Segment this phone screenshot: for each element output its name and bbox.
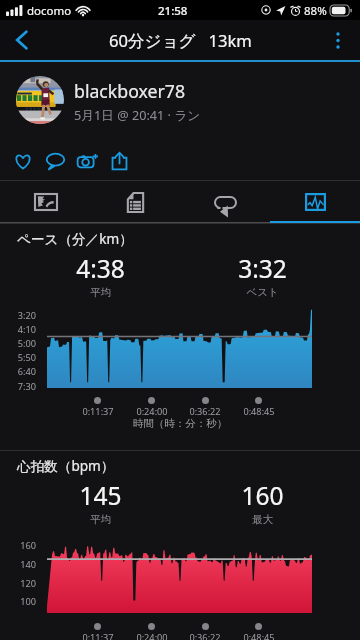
staticText: 0:48:45: [229, 405, 289, 418]
staticText: 平均: [90, 286, 111, 299]
staticText: 4:38: [76, 252, 125, 285]
staticText: 平均: [90, 513, 111, 526]
button[interactable]: Back: [0, 20, 44, 60]
staticText: 最大: [252, 513, 273, 526]
button[interactable]: Share: [103, 147, 135, 175]
staticText: 心拍数（bpm）: [17, 456, 115, 475]
staticText: 0:11:37: [68, 405, 128, 418]
staticText: 140: [4, 558, 36, 571]
staticText: 7:30: [4, 380, 36, 393]
button[interactable]: blackboxer78: [74, 79, 201, 123]
staticText: 時間（時：分：秒）: [0, 417, 360, 430]
staticText: 60分ジョグ 13km: [109, 29, 252, 52]
button[interactable]: Add photo: [71, 147, 103, 175]
button[interactable]: Laps: [180, 181, 270, 221]
staticText: 120: [4, 577, 36, 590]
staticText: 160: [4, 539, 36, 552]
button[interactable]: Profile photo: [16, 76, 64, 124]
staticText: 160: [241, 479, 284, 512]
staticText: 6:40: [4, 365, 36, 378]
staticText: 3:20: [4, 309, 36, 322]
staticText: ペース（分／km）: [17, 229, 133, 248]
staticText: docomo: [27, 3, 72, 19]
button[interactable]: Analysis: [270, 181, 360, 221]
staticText: 145: [79, 479, 122, 512]
staticText: 0:36:22: [175, 405, 235, 418]
staticText: 5:00: [4, 337, 36, 350]
staticText: 3:32: [238, 252, 287, 285]
button[interactable]: Map: [1, 181, 91, 221]
staticText: 5月1日 @ 20:41 · ラン: [74, 106, 201, 123]
staticText: 100: [4, 595, 36, 608]
staticText: 5:50: [4, 351, 36, 364]
staticText: 4:10: [4, 323, 36, 336]
button[interactable]: More options: [316, 20, 360, 60]
staticText: 0:36:22: [175, 631, 235, 640]
staticText: 0:24:00: [122, 405, 182, 418]
staticText: blackboxer78: [74, 79, 186, 103]
staticText: 0:48:45: [229, 631, 289, 640]
button[interactable]: Splits: [90, 181, 180, 221]
staticText: 88%: [304, 3, 327, 19]
button[interactable]: Like: [7, 147, 39, 175]
staticText: 21:58: [158, 3, 188, 19]
staticText: ベスト: [246, 286, 279, 299]
button[interactable]: Comment: [39, 147, 71, 175]
staticText: 0:24:00: [122, 631, 182, 640]
staticText: 0:11:37: [68, 631, 128, 640]
